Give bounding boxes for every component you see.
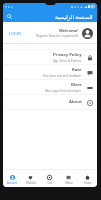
staticText: Privacy Policy: [53, 52, 82, 58]
button[interactable]: Menu: [59, 175, 78, 187]
button[interactable]: Search: [5, 12, 13, 20]
button[interactable]: Home: [78, 175, 97, 187]
staticText: الصفحة الرئيسية: [55, 13, 93, 20]
button[interactable]: Account: [3, 175, 21, 187]
staticText: App Terms & Policies: [53, 59, 82, 63]
button[interactable]: Rate: [3, 65, 97, 79]
button[interactable]: Wishlist: [21, 175, 40, 187]
staticText: LOGIN: [9, 31, 22, 36]
staticText: Cart: [47, 181, 53, 185]
button[interactable]: More: [3, 80, 97, 94]
button[interactable]: Privacy Policy: [3, 50, 97, 64]
staticText: Register Now (or) registered?: [36, 34, 79, 38]
staticText: Welcome!: [59, 28, 79, 33]
staticText: Rate: [72, 67, 82, 73]
button[interactable]: LOGIN: [6, 29, 25, 38]
staticText: Menu: [65, 181, 73, 185]
staticText: More apps from developer: [45, 89, 82, 93]
staticText: Account: [7, 181, 17, 185]
staticText: Give your rate and feedback: [43, 74, 82, 78]
staticText: Wishlist: [26, 181, 36, 185]
staticText: More: [71, 82, 82, 88]
button[interactable]: About: [3, 95, 97, 109]
staticText: About: [69, 99, 82, 105]
staticText: Home: [84, 181, 92, 185]
button[interactable]: Account: [82, 28, 93, 39]
button[interactable]: Cart: [40, 175, 59, 187]
